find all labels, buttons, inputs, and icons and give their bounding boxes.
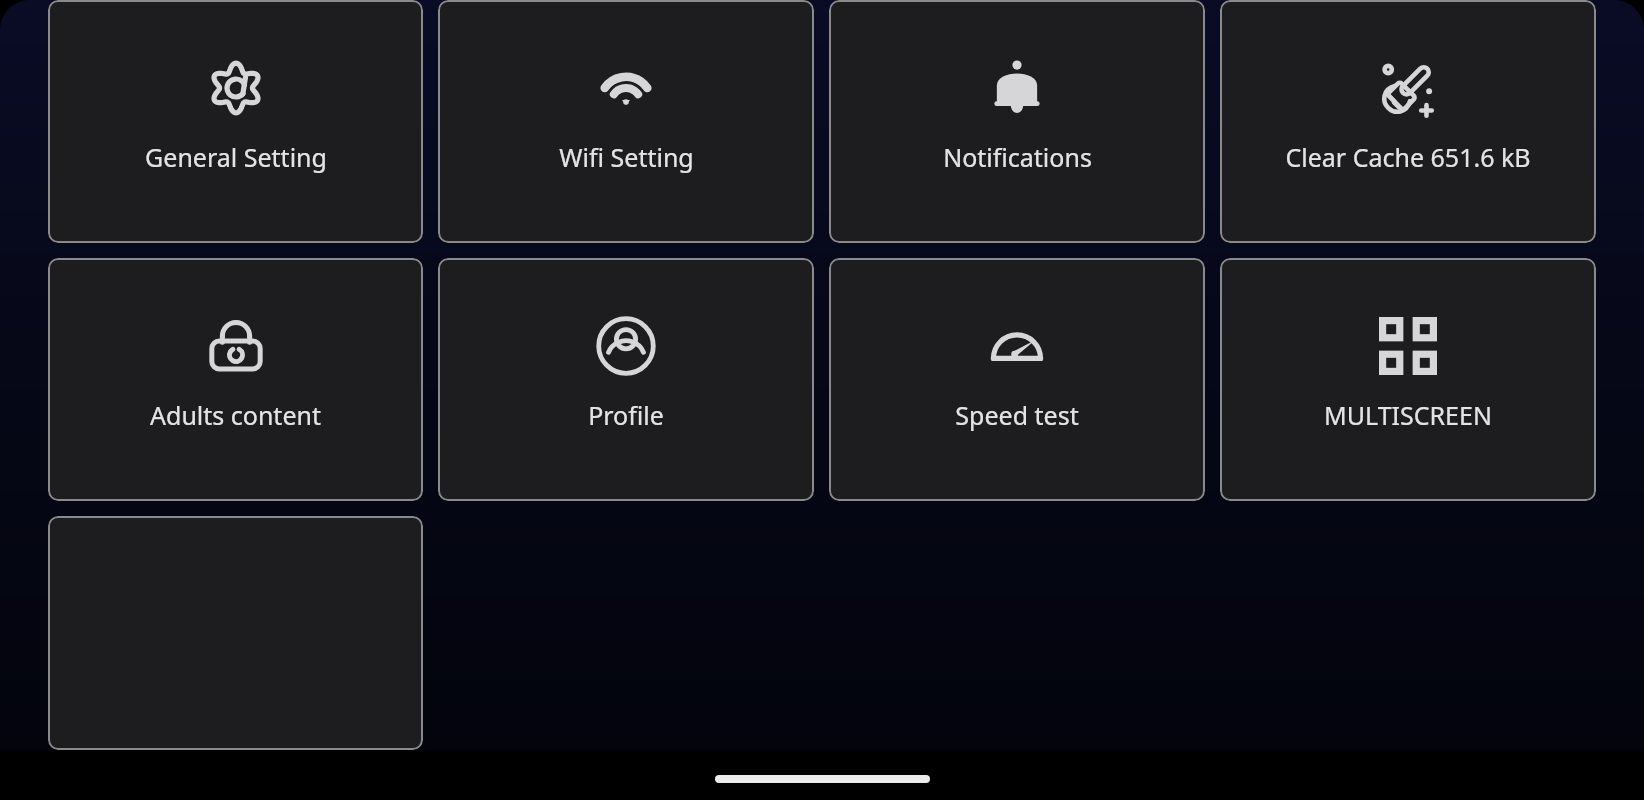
button[interactable]: Wifi Setting xyxy=(438,0,814,243)
staticText: Settings xyxy=(257,44,375,86)
staticText: Profile xyxy=(588,398,664,432)
staticText: Speed test xyxy=(955,398,1079,432)
button[interactable]: General Setting xyxy=(48,0,423,243)
button[interactable]: Speed test xyxy=(829,258,1205,501)
staticText: General Setting xyxy=(145,140,327,174)
staticText: MULTISCREEN xyxy=(1324,398,1492,432)
staticText: Notifications xyxy=(943,140,1092,174)
staticText: Adults content xyxy=(150,398,321,432)
button[interactable]: Clear Cache 651.6 kB xyxy=(1220,0,1596,243)
staticText: Wifi Setting xyxy=(559,140,694,174)
button[interactable]: Notifications xyxy=(829,0,1205,243)
button[interactable]: MULTISCREEN xyxy=(1220,258,1596,501)
button[interactable]: Profile xyxy=(438,258,814,501)
staticText: Clear Cache 651.6 kB xyxy=(1285,140,1531,174)
button[interactable] xyxy=(48,516,423,750)
button[interactable]: Adults content xyxy=(48,258,423,501)
